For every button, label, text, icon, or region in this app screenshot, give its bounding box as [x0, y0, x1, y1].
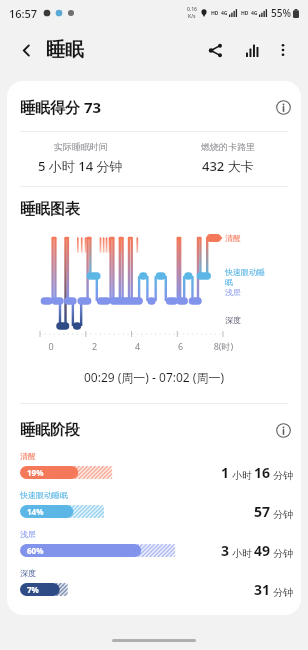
staticText: HD [241, 10, 249, 17]
button[interactable]: 快速眼动睡眠 [7, 486, 301, 525]
staticText: 5 小时 14 分钟 [38, 157, 123, 175]
staticText: 14% [27, 506, 44, 517]
button[interactable]: More options [269, 36, 297, 64]
button[interactable]: 深度 [7, 564, 301, 603]
staticText: 3 [221, 541, 230, 560]
staticText: 49 [254, 541, 271, 560]
button[interactable]: Information [270, 417, 296, 443]
staticText: 睡眠阶段 [20, 421, 80, 440]
button[interactable]: Statistics [237, 34, 269, 66]
staticText: 60% [27, 545, 44, 556]
staticText: 4 [116, 340, 159, 352]
staticText: 快速眼动睡眠 [20, 490, 68, 500]
staticText: K/s [188, 13, 196, 20]
staticText: 浅层 [20, 529, 36, 539]
staticText: 快速眼动睡 [225, 267, 265, 277]
staticText: 16:57 [9, 6, 38, 21]
staticText: 7% [27, 584, 39, 595]
staticText: 6 [159, 340, 202, 352]
staticText: 睡眠得分 73 [20, 97, 102, 117]
staticText: 分钟 [273, 469, 293, 482]
staticText: 清醒 [225, 233, 241, 243]
staticText: 小时 [232, 469, 252, 482]
staticText: 1 [221, 463, 230, 482]
staticText: 432 大卡 [202, 157, 254, 175]
staticText: 分钟 [273, 508, 293, 521]
staticText: 小时 [232, 547, 252, 560]
staticText: 57 [254, 502, 271, 521]
button[interactable]: Share [199, 34, 231, 66]
staticText: 4G [221, 10, 228, 17]
staticText: 19% [27, 467, 44, 478]
staticText: 分钟 [273, 586, 293, 599]
staticText: 55% [271, 6, 291, 20]
staticText: 00:29 (周一) - 07:02 (周一) [7, 369, 301, 385]
staticText: 31 [254, 580, 271, 599]
staticText: HD [211, 10, 219, 17]
staticText: 燃烧的卡路里 [201, 141, 255, 152]
staticText: 0.16 [187, 6, 197, 13]
staticText: 清醒 [20, 451, 36, 461]
staticText: 16 [254, 463, 271, 482]
staticText: 8(时) [202, 340, 245, 352]
staticText: 深度 [20, 568, 36, 578]
button[interactable]: 浅层 [7, 525, 301, 564]
button[interactable]: Information [270, 94, 296, 120]
staticText: 眠 [225, 277, 233, 287]
staticText: 分钟 [273, 547, 293, 560]
staticText: 实际睡眠时间 [54, 141, 108, 152]
staticText: 睡眠 [46, 38, 84, 62]
staticText: 4G [251, 10, 258, 17]
staticText: 2 [73, 340, 116, 352]
button[interactable]: 清醒 [7, 447, 301, 486]
staticText: 浅层 [225, 287, 241, 297]
staticText: 睡眠图表 [20, 200, 80, 219]
staticText: 0 [29, 340, 73, 352]
staticText: 深度 [225, 315, 241, 325]
button[interactable]: Back [11, 35, 41, 65]
